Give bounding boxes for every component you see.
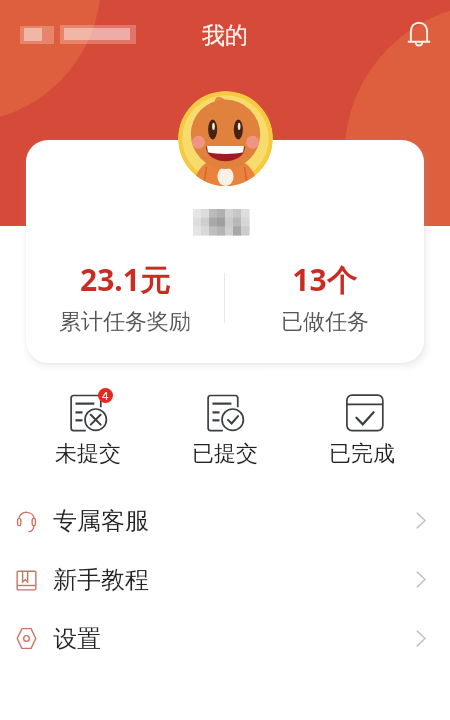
button[interactable]: Notifications [399, 15, 439, 55]
button[interactable]: 已完成 [293, 388, 430, 468]
button[interactable]: 4 [20, 388, 156, 468]
button[interactable]: 已提交 [156, 388, 293, 468]
staticText: 4 [102, 388, 109, 403]
staticText: 我的 [202, 21, 248, 50]
staticText: 未提交 [55, 440, 121, 468]
staticText: 13个 [292, 259, 357, 300]
button[interactable]: 13个 [225, 259, 424, 336]
staticText: 已完成 [329, 440, 395, 468]
button[interactable]: 23.1元 [26, 259, 224, 336]
button[interactable]: 专属客服 [0, 491, 450, 550]
staticText: 设置 [53, 624, 101, 654]
button[interactable]: Avatar [178, 91, 273, 186]
button[interactable]: 设置 [0, 609, 450, 668]
staticText: 23.1元 [80, 259, 170, 300]
staticText: 已做任务 [281, 308, 369, 336]
staticText: 已提交 [192, 440, 258, 468]
staticText: 新手教程 [53, 565, 149, 595]
button[interactable]: 新手教程 [0, 550, 450, 609]
staticText: 累计任务奖励 [59, 308, 191, 336]
staticText: 专属客服 [53, 506, 149, 536]
